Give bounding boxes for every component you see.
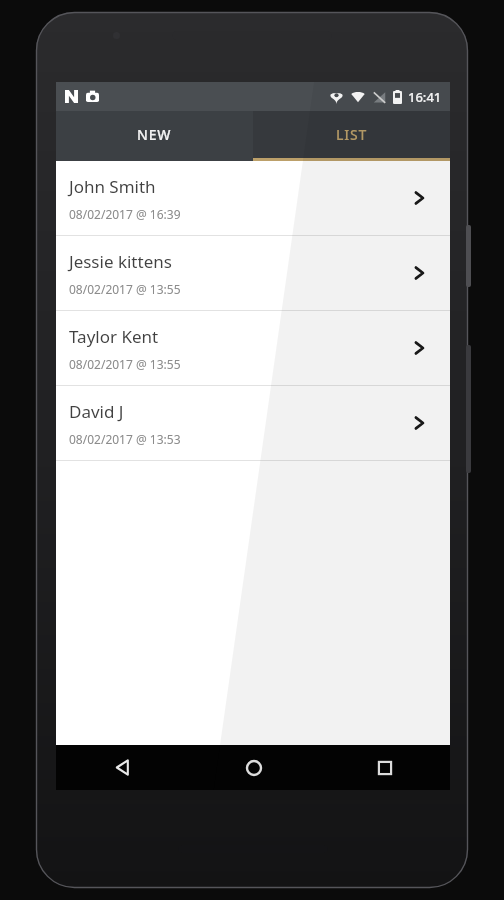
staticText: David J bbox=[69, 400, 124, 423]
button[interactable]: Jessie kittens bbox=[56, 236, 450, 310]
staticText: Jessie kittens bbox=[69, 250, 172, 273]
button[interactable]: Recent apps bbox=[319, 745, 450, 790]
button[interactable]: NEW bbox=[56, 111, 253, 158]
staticText: 08/02/2017 @ 16:39 bbox=[69, 206, 181, 222]
staticText: NEW bbox=[137, 125, 172, 144]
staticText: 08/02/2017 @ 13:55 bbox=[69, 356, 181, 372]
staticText: Taylor Kent bbox=[69, 325, 159, 348]
staticText: 08/02/2017 @ 13:55 bbox=[69, 281, 181, 297]
staticText: John Smith bbox=[69, 175, 156, 198]
staticText: 16:41 bbox=[408, 88, 442, 106]
button[interactable]: David J bbox=[56, 386, 450, 460]
button[interactable]: Home bbox=[188, 745, 319, 790]
button[interactable]: Back bbox=[56, 745, 188, 790]
button[interactable]: LIST bbox=[253, 111, 450, 158]
staticText: LIST bbox=[336, 125, 368, 144]
staticText: 08/02/2017 @ 13:53 bbox=[69, 431, 181, 447]
button[interactable]: John Smith bbox=[56, 161, 450, 235]
button[interactable]: Taylor Kent bbox=[56, 311, 450, 385]
